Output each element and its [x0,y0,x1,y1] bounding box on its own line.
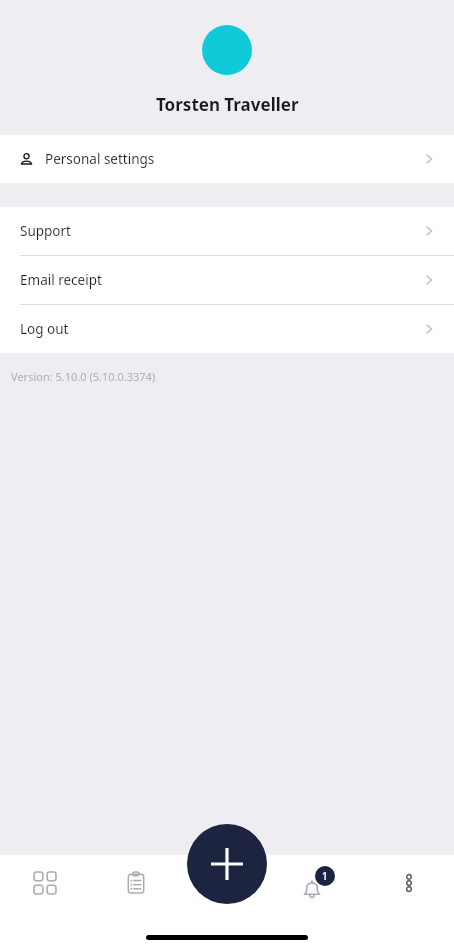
button[interactable]: Profile picture [202,25,252,75]
button[interactable]: Email receipt [0,256,454,304]
button[interactable]: Log out [0,305,454,353]
button[interactable]: Tasks [90,855,181,911]
staticText: 1 [322,869,328,883]
staticText: Version: 5.10.0 (5.10.0.3374) [11,369,156,384]
staticText: Torsten Traveller [156,93,299,116]
button[interactable]: Notifications [272,855,363,911]
staticText: Support [20,222,71,240]
button[interactable]: More options [363,855,454,911]
staticText: Email receipt [20,271,102,289]
staticText: Log out [20,320,69,338]
button[interactable]: Support [0,207,454,255]
button[interactable]: Add [187,824,267,904]
button[interactable]: Personal settings [0,135,454,183]
staticText: Personal settings [45,150,155,168]
button[interactable]: Dashboard [0,855,90,911]
